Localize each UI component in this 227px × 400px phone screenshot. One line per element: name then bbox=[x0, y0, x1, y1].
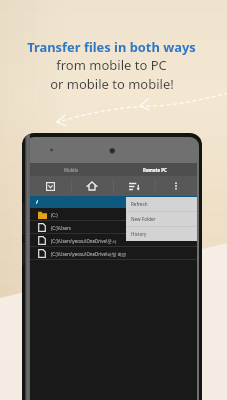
button[interactable]: Refresh bbox=[126, 197, 197, 211]
button[interactable]: Sort bbox=[113, 176, 155, 196]
button[interactable]: (C:)\Users\yeosu\OneDrive\문서 bbox=[30, 234, 197, 247]
button[interactable]: (C:)\Users bbox=[30, 221, 197, 234]
button[interactable]: More options bbox=[155, 176, 197, 196]
staticText: Transfer files in both ways bbox=[27, 38, 196, 56]
button[interactable]: New Folder bbox=[126, 212, 197, 226]
staticText: New Folder bbox=[131, 216, 156, 222]
button[interactable]: Select all bbox=[30, 176, 71, 196]
staticText: (C:) bbox=[51, 212, 58, 218]
staticText: or mobile to mobile! bbox=[50, 75, 174, 93]
button[interactable]: (C:)\Users\yeosu\OneDrive\바탕 화면 bbox=[30, 247, 197, 260]
staticText: (C:)\Users bbox=[51, 225, 71, 231]
button[interactable]: Home bbox=[71, 176, 113, 196]
staticText: Refresh bbox=[131, 201, 148, 207]
button[interactable]: History bbox=[126, 227, 197, 241]
staticText: History bbox=[131, 231, 147, 237]
button[interactable]: / bbox=[30, 196, 197, 208]
staticText: (C:)\Users\yeosu\OneDrive\바탕 화면 bbox=[51, 251, 127, 257]
staticText: (C:)\Users\yeosu\OneDrive\문서 bbox=[51, 238, 117, 244]
staticText: from mobile to PC bbox=[56, 56, 167, 74]
button[interactable]: Remote PC bbox=[113, 163, 197, 176]
button[interactable]: Mobile bbox=[30, 163, 113, 176]
staticText: Mobile bbox=[64, 167, 79, 173]
staticText: Remote PC bbox=[143, 167, 167, 173]
button[interactable]: (C:) bbox=[30, 208, 197, 221]
staticText: / bbox=[36, 199, 39, 206]
